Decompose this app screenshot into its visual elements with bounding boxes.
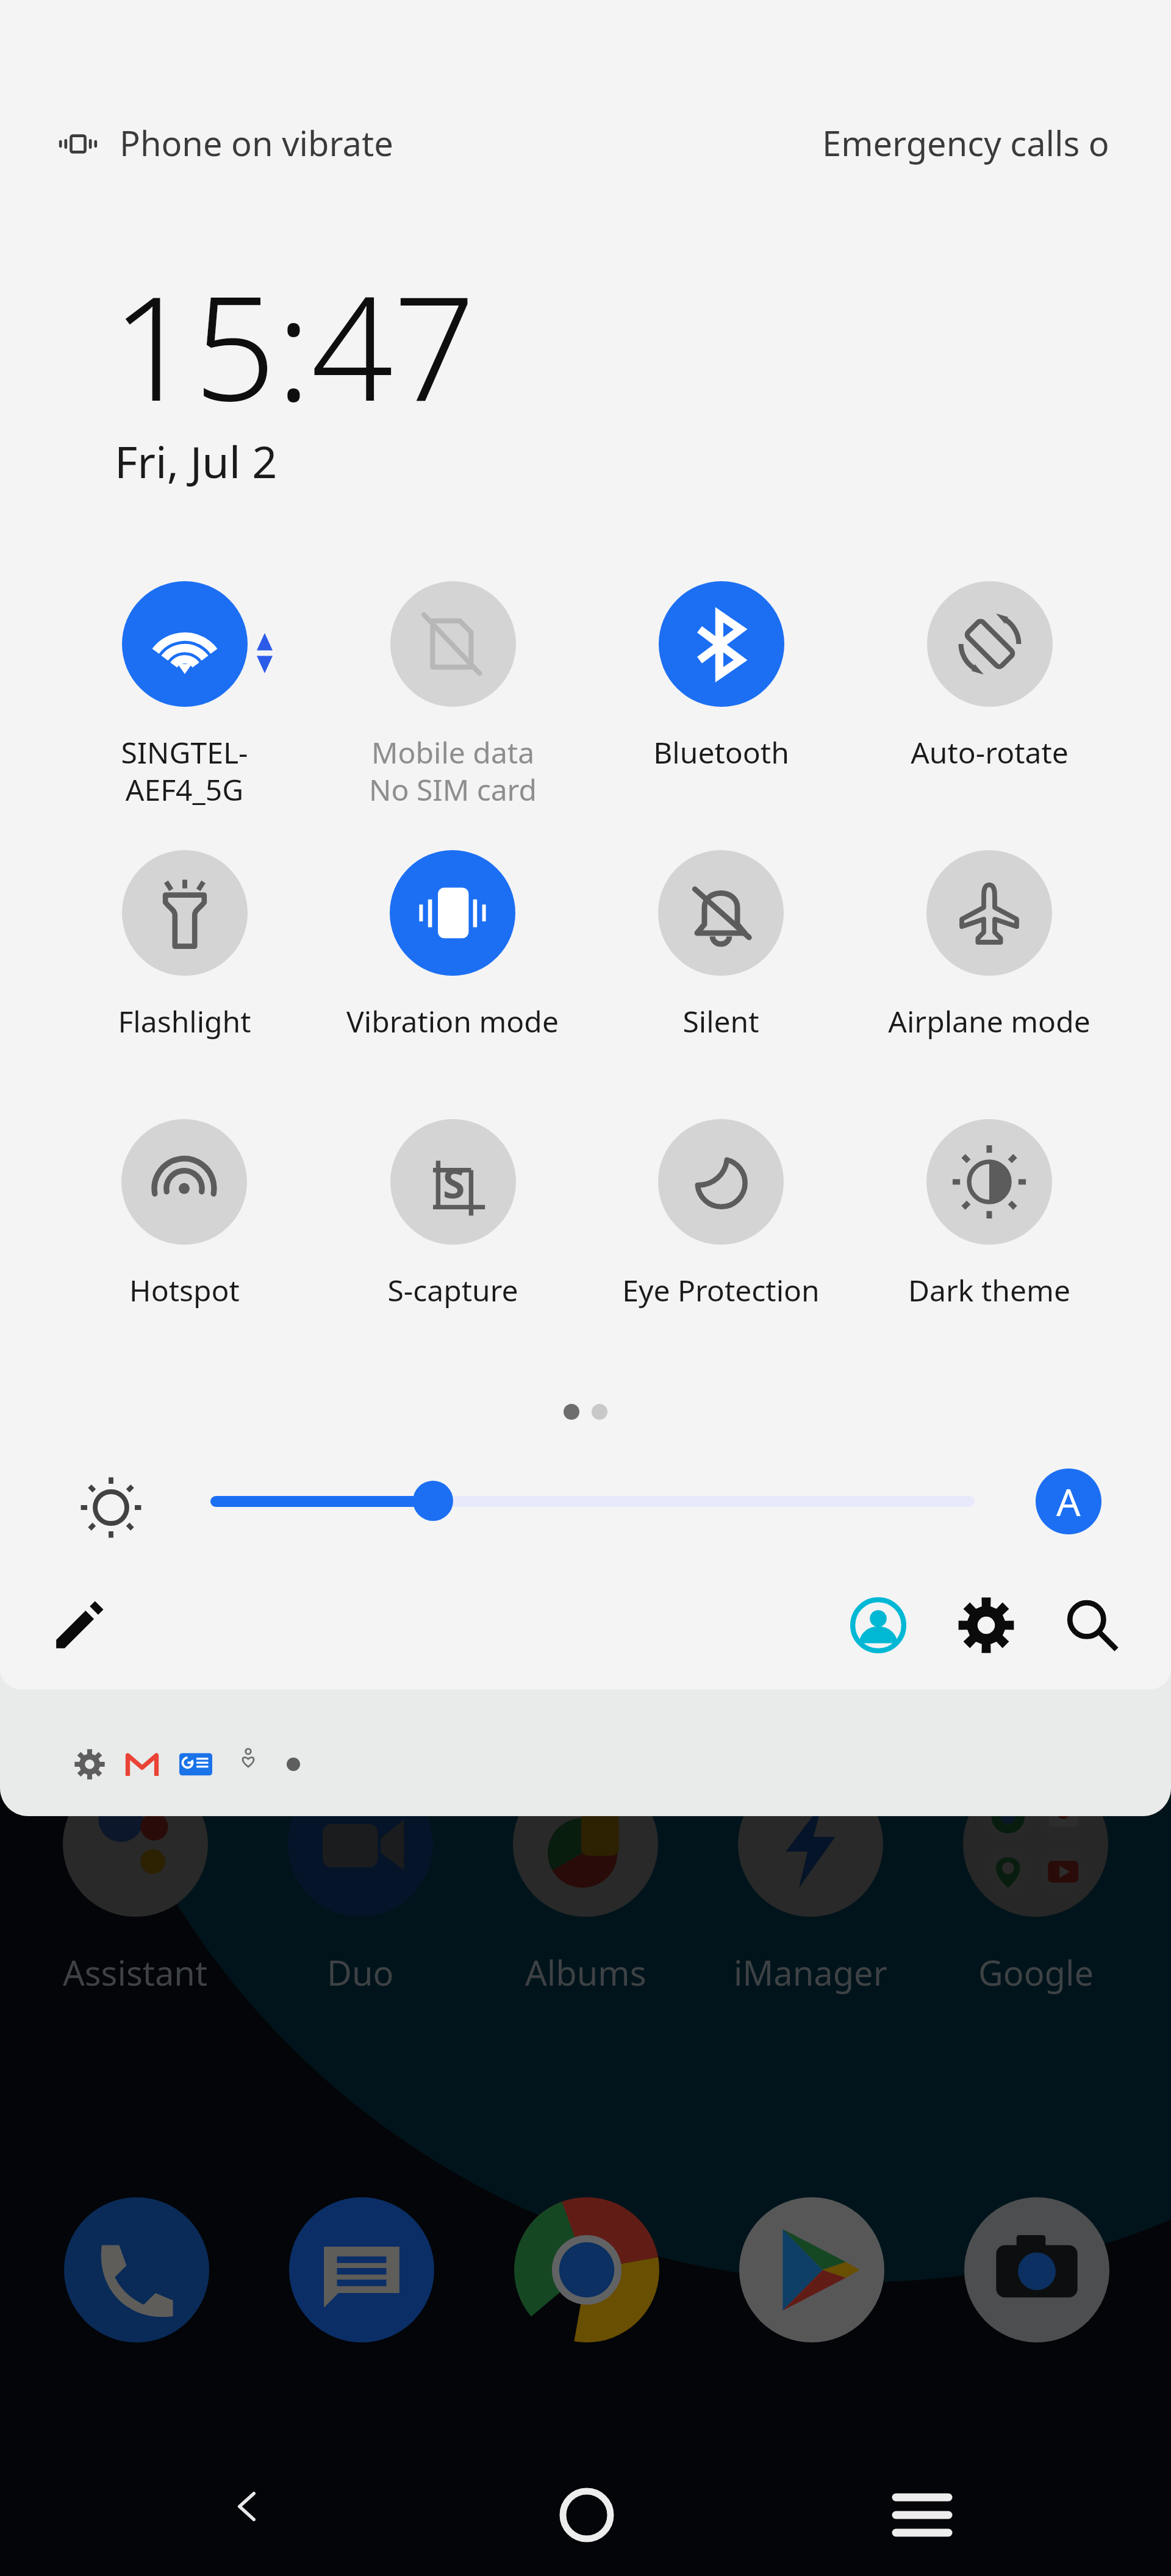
button[interactable]: SINGTEL- AEF4_5G: [51, 581, 318, 843]
button[interactable]: App: [964, 2197, 1109, 2342]
button[interactable]: App: [289, 2197, 434, 2342]
button[interactable]: App: [64, 2197, 209, 2342]
button[interactable]: Vibration mode: [319, 850, 586, 1112]
button[interactable]: Assistant: [44, 1772, 227, 2016]
button[interactable]: Search: [1056, 1589, 1129, 1662]
staticText: Mobile data No SIM card: [369, 732, 537, 809]
button[interactable]: App: [739, 2197, 884, 2342]
button[interactable]: Airplane mode: [856, 850, 1123, 1112]
button[interactable]: Hotspot: [51, 1119, 318, 1381]
button[interactable]: S: [319, 1119, 586, 1381]
button[interactable]: Google: [944, 1772, 1127, 2016]
staticText: Google: [978, 1949, 1094, 1995]
button[interactable]: A: [1036, 1469, 1101, 1534]
button[interactable]: Edit: [43, 1589, 116, 1662]
staticText: Vibration mode: [346, 1001, 559, 1041]
staticText: Airplane mode: [888, 1001, 1090, 1041]
button[interactable]: Mobile data No SIM card: [319, 581, 586, 843]
staticText: Fri, Jul 2: [115, 431, 278, 491]
staticText: Auto-rotate: [911, 732, 1069, 772]
button[interactable]: Duo: [269, 1772, 452, 2016]
staticText: Eye Protection: [622, 1270, 820, 1310]
staticText: Hotspot: [129, 1270, 240, 1310]
staticText: Silent: [682, 1001, 759, 1041]
button[interactable]: Auto-rotate: [856, 581, 1123, 843]
staticText: S: [443, 1155, 465, 1210]
staticText: Dark theme: [908, 1270, 1070, 1310]
staticText: S-capture: [387, 1270, 518, 1310]
staticText: A: [1056, 1476, 1081, 1527]
button[interactable]: Bluetooth: [587, 581, 854, 843]
button[interactable]: Recents: [873, 2466, 971, 2564]
button[interactable]: Silent: [587, 850, 854, 1112]
button[interactable]: Flashlight: [51, 850, 318, 1112]
staticText: Bluetooth: [653, 732, 789, 772]
button[interactable]: Back: [198, 2466, 296, 2564]
staticText: Emergency calls o: [822, 120, 1109, 166]
button[interactable]: App: [514, 2197, 659, 2342]
button[interactable]: iManager: [719, 1772, 902, 2016]
button[interactable]: Home: [538, 2466, 636, 2564]
staticText: Assistant: [63, 1949, 208, 1995]
button[interactable]: Eye Protection: [587, 1119, 854, 1381]
staticText: iManager: [734, 1949, 887, 1995]
staticText: Flashlight: [118, 1001, 251, 1041]
staticText: Phone on vibrate: [120, 120, 393, 166]
staticText: Duo: [327, 1949, 394, 1995]
button[interactable]: Albums: [494, 1772, 677, 2016]
staticText: 15:47: [112, 247, 476, 443]
button[interactable]: Dark theme: [856, 1119, 1123, 1381]
button[interactable]: Account: [842, 1589, 915, 1662]
staticText: Albums: [525, 1949, 646, 1995]
button[interactable]: Settings: [950, 1589, 1023, 1662]
staticText: SINGTEL- AEF4_5G: [121, 732, 248, 809]
